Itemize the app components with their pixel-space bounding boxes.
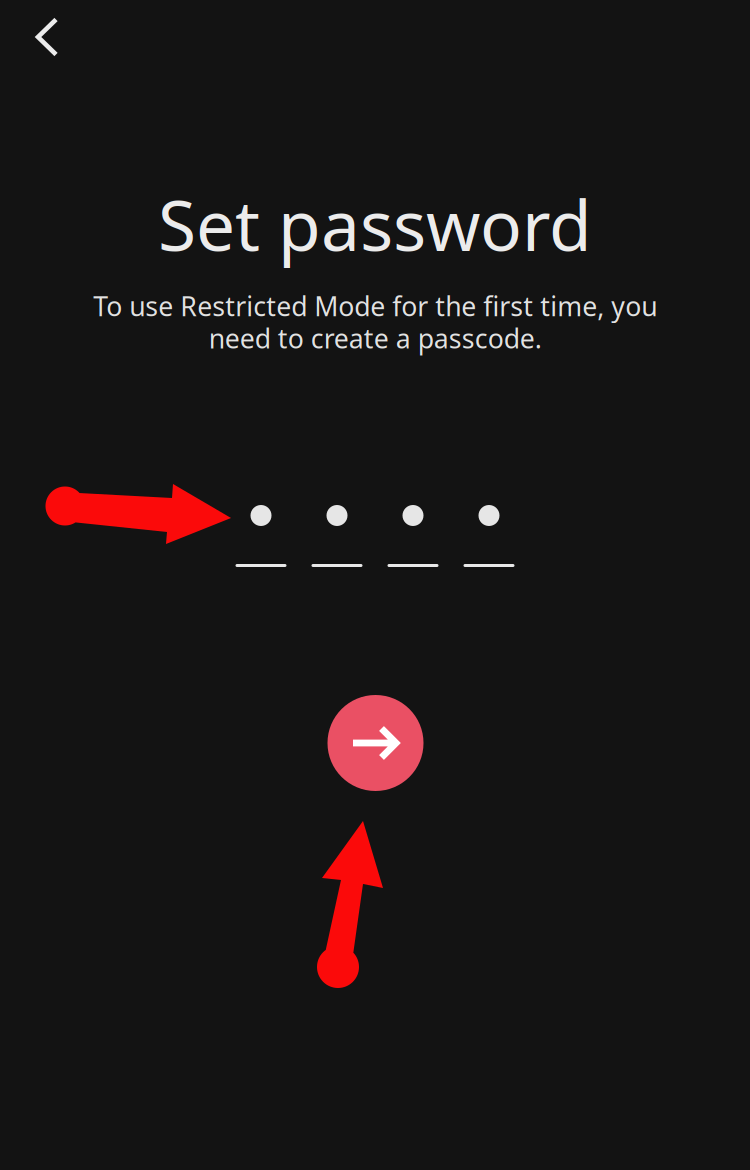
- button[interactable]: Back: [17, 7, 77, 67]
- button[interactable]: Continue: [327, 695, 423, 791]
- staticText: To use Restricted Mode for the first tim…: [93, 288, 657, 356]
- staticText: Set password: [158, 178, 592, 270]
